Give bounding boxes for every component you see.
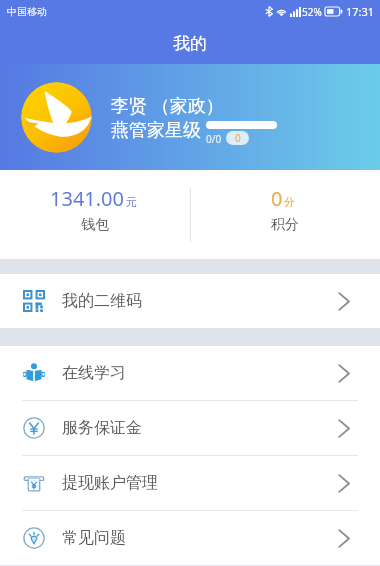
staticText: 52% [302, 5, 322, 19]
button[interactable]: 1341.00 [0, 185, 190, 234]
button[interactable]: 常见问题 [0, 511, 380, 565]
staticText: 常见问题 [62, 528, 126, 548]
staticText: 李贤 （家政） [111, 93, 224, 118]
staticText: 我的 [173, 33, 207, 54]
button[interactable]: 0 [190, 185, 380, 234]
button[interactable]: 我的二维码 [0, 274, 380, 328]
button[interactable]: 提现账户管理 [0, 456, 380, 510]
staticText: 我的二维码 [62, 291, 142, 311]
staticText: 服务保证金 [62, 418, 142, 438]
staticText: 0/0 [206, 132, 222, 146]
staticText: 17:31 [346, 4, 375, 19]
button[interactable]: 在线学习 [0, 346, 380, 400]
button[interactable]: Avatar [21, 82, 92, 153]
button[interactable]: 服务保证金 [0, 401, 380, 455]
staticText: 0 [235, 131, 241, 145]
staticText: 钱包 [81, 216, 109, 234]
staticText: 提现账户管理 [62, 473, 158, 493]
staticText: 积分 [271, 216, 299, 234]
staticText: 中国移动 [7, 5, 47, 18]
staticText: 0 [271, 185, 288, 212]
staticText: 1341.00 [50, 185, 130, 212]
staticText: 在线学习 [62, 363, 126, 383]
staticText: 分 [284, 195, 295, 209]
staticText: 燕管家星级 [111, 119, 201, 142]
staticText: 元 [126, 195, 137, 209]
